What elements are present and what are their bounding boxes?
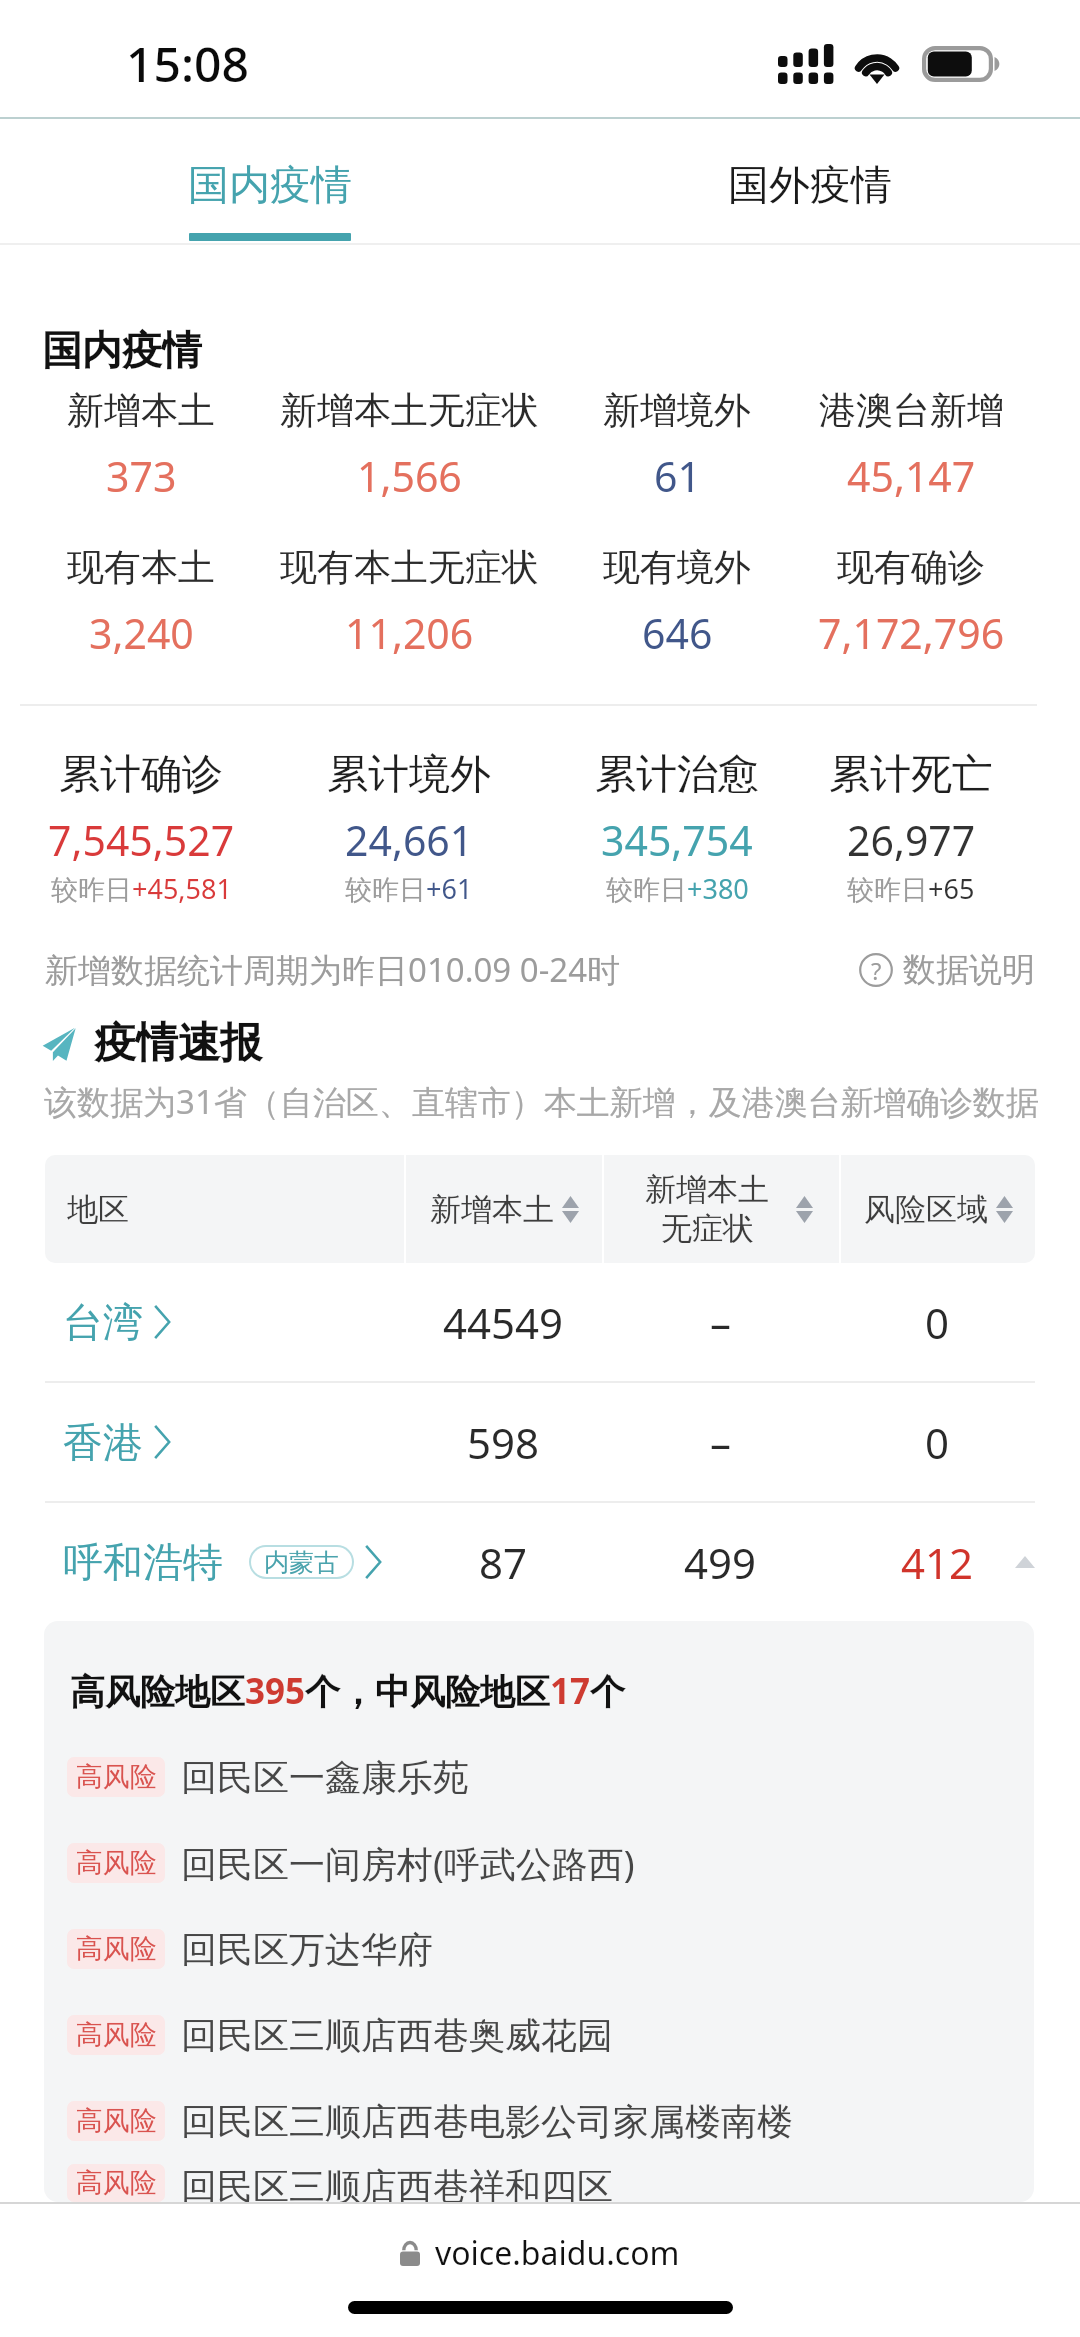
staticText: 较昨日+65 — [847, 870, 975, 907]
staticText: 7,172,796 — [818, 605, 1005, 661]
staticText: 高风险 — [76, 1760, 157, 1794]
staticText: 疫情速报 — [94, 1017, 262, 1070]
staticText: 新增本土 — [430, 1190, 554, 1229]
button[interactable]: 国外疫情 — [540, 119, 1080, 243]
staticText: 累计境外 — [327, 749, 491, 801]
staticText: 新增数据统计周期为昨日010.09 0-24时 — [45, 947, 621, 992]
button[interactable]: 新增本土 — [604, 1155, 839, 1263]
button[interactable]: 高风险 — [67, 1992, 1034, 2078]
staticText: 呼和浩特 — [63, 1537, 223, 1587]
button[interactable]: 国内疫情 — [0, 119, 540, 243]
staticText: 7,545,527 — [48, 812, 235, 867]
staticText: 回民区三顺店西巷电影公司家属楼南楼 — [181, 2099, 793, 2144]
staticText: 内蒙古 — [264, 1547, 339, 1577]
staticText: 较昨日+45,581 — [51, 870, 232, 907]
button[interactable]: ? — [859, 949, 1035, 991]
button[interactable]: 台湾 — [0, 1263, 1080, 1383]
staticText: 0 — [925, 1294, 950, 1351]
staticText: 累计死亡 — [829, 749, 993, 801]
button[interactable]: 高风险 — [67, 1906, 1034, 1992]
button[interactable]: 高风险 — [67, 1734, 1034, 1820]
staticText: 24,661 — [345, 812, 474, 867]
button[interactable]: 高风险 — [67, 2164, 1034, 2202]
staticText: 现有确诊 — [837, 544, 985, 591]
staticText: 新增本土 — [645, 1170, 769, 1209]
button[interactable]: 高风险 — [67, 1820, 1034, 1906]
staticText: 高风险 — [76, 2166, 157, 2200]
button[interactable]: 呼和浩特 — [0, 1503, 1080, 1621]
button[interactable]: 风险区域 — [841, 1155, 1035, 1263]
button[interactable]: 高风险 — [67, 2078, 1034, 2164]
staticText: 61 — [654, 448, 701, 504]
staticText: 累计治愈 — [595, 749, 759, 801]
staticText: 数据说明 — [903, 949, 1035, 991]
staticText: 高风险 — [76, 1846, 157, 1880]
button[interactable]: Collapse risk area details — [839, 1503, 1035, 1621]
staticText: 现有本土 — [67, 544, 215, 591]
button[interactable]: voice.baidu.com — [400, 2231, 680, 2275]
staticText: 373 — [106, 448, 177, 504]
staticText: 412 — [901, 1534, 974, 1591]
staticText: 646 — [642, 605, 713, 661]
staticText: 累计确诊 — [59, 749, 223, 801]
staticText: 现有境外 — [603, 544, 751, 591]
button[interactable]: 香港 — [0, 1383, 1080, 1503]
staticText: 国内疫情 — [42, 325, 202, 375]
staticText: 345,754 — [601, 812, 753, 867]
staticText: 新增本土无症状 — [280, 387, 539, 434]
staticText: 3,240 — [89, 605, 194, 661]
staticText: – — [710, 1294, 732, 1351]
staticText: – — [710, 1414, 732, 1471]
staticText: 1,566 — [357, 448, 462, 504]
button[interactable]: 新增本土 — [406, 1155, 602, 1263]
staticText: 44549 — [443, 1294, 564, 1351]
staticText: 87 — [479, 1534, 528, 1591]
staticText: 高风险 — [76, 2104, 157, 2138]
staticText: 香港 — [63, 1417, 143, 1467]
staticText: 台湾 — [63, 1297, 143, 1347]
staticText: 回民区一鑫康乐苑 — [181, 1755, 469, 1800]
staticText: 国内疫情 — [188, 160, 352, 212]
staticText: 现有本土无症状 — [280, 544, 539, 591]
staticText: 高风险 — [76, 2018, 157, 2052]
staticText: 499 — [684, 1534, 757, 1591]
staticText: 高风险地区395个，中风险地区17个 — [70, 1667, 626, 1715]
staticText: 回民区三顺店西巷奥威花园 — [181, 2013, 613, 2058]
staticText: 45,147 — [847, 448, 976, 504]
staticText: 回民区三顺店西巷祥和四区 — [181, 2164, 613, 2202]
staticText: 国外疫情 — [728, 160, 892, 212]
staticText: 新增本土 — [67, 387, 215, 434]
staticText: ? — [871, 954, 882, 987]
staticText: 港澳台新增 — [819, 387, 1004, 434]
staticText: 回民区一间房村(呼武公路西) — [181, 1839, 635, 1888]
staticText: 新增境外 — [603, 387, 751, 434]
staticText: 15:08 — [126, 31, 249, 96]
staticText: 11,206 — [345, 605, 474, 661]
staticText: 回民区万达华府 — [181, 1927, 433, 1972]
staticText: 风险区域 — [864, 1190, 988, 1229]
staticText: 598 — [467, 1414, 540, 1471]
staticText: 较昨日+61 — [345, 870, 473, 907]
staticText: 26,977 — [847, 812, 976, 867]
staticText: 地区 — [67, 1190, 129, 1229]
staticText: 较昨日+380 — [606, 870, 749, 907]
staticText: 0 — [925, 1414, 950, 1471]
staticText: 高风险 — [76, 1932, 157, 1966]
staticText: 该数据为31省（自治区、直辖市）本土新增，及港澳台新增确诊数据 — [44, 1079, 1039, 1124]
staticText: voice.baidu.com — [435, 2231, 680, 2275]
staticText: 无症状 — [661, 1209, 754, 1248]
